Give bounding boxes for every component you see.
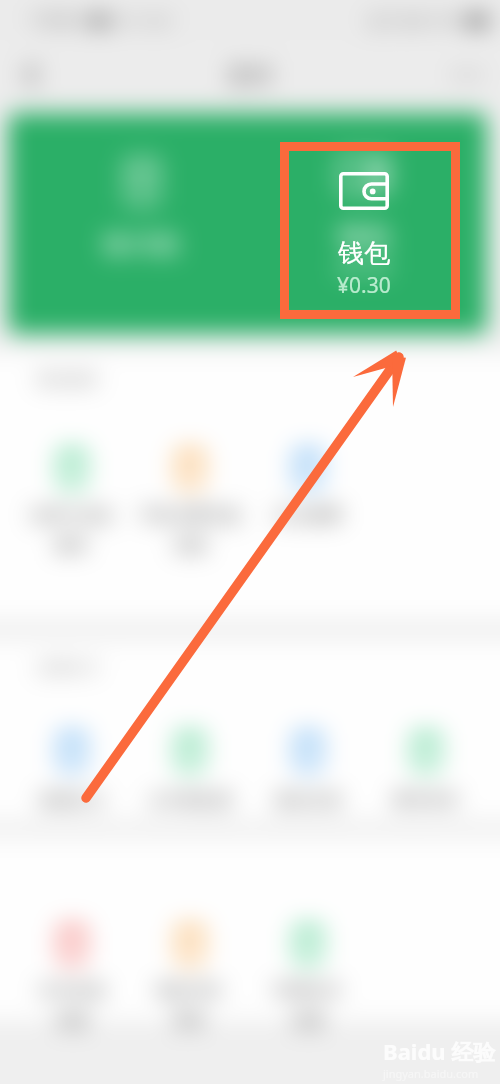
- button[interactable]: [280, 723, 336, 779]
- button[interactable]: [44, 723, 100, 779]
- button[interactable]: 吃喝玩乐 优惠: [250, 980, 366, 1031]
- button[interactable]: [162, 440, 218, 496]
- staticText: 中国移动: [30, 12, 86, 30]
- button[interactable]: Back: [8, 52, 54, 98]
- staticText: 87%: [433, 11, 461, 30]
- staticText: 酒店住宿: [250, 790, 366, 811]
- staticText: ¥0.30: [337, 271, 391, 300]
- staticText: 吃喝玩乐 优惠: [250, 980, 366, 1031]
- staticText: 钱包: [338, 220, 390, 253]
- staticText: 生活缴费: [250, 505, 366, 526]
- button[interactable]: 生活缴费: [250, 505, 366, 526]
- button[interactable]: 钱包 Wallet: [289, 152, 439, 312]
- button[interactable]: [280, 440, 336, 496]
- staticText: 火车票机票: [132, 790, 248, 811]
- button[interactable]: 电影演出 票务: [132, 980, 248, 1031]
- button[interactable]: [280, 916, 336, 972]
- button[interactable]: [162, 723, 218, 779]
- button[interactable]: [162, 916, 218, 972]
- staticText: 京东优选 优惠: [14, 980, 130, 1031]
- staticText: 电影演出 票务: [132, 980, 248, 1031]
- staticText: 手机话费充值 优惠: [132, 505, 248, 556]
- button[interactable]: 手机话费充值 优惠: [132, 505, 248, 556]
- button[interactable]: More options: [444, 52, 490, 98]
- staticText: 钱包: [338, 237, 390, 270]
- staticText: Baidu 经验: [383, 1036, 496, 1066]
- button[interactable]: [44, 440, 100, 496]
- button[interactable]: 火车票机票: [132, 790, 248, 811]
- button[interactable]: [398, 723, 454, 779]
- button[interactable]: 信用卡还款 服务: [14, 505, 130, 556]
- staticText: 摩拜单车: [368, 790, 484, 811]
- button[interactable]: 京东优选 优惠: [14, 980, 130, 1031]
- staticText: 收付款: [103, 228, 181, 261]
- button[interactable]: [44, 916, 100, 972]
- staticText: ¥0.30: [337, 254, 391, 283]
- button[interactable]: 摩拜单车: [368, 790, 484, 811]
- staticText: 支付: [227, 61, 273, 90]
- staticText: 信用卡还款 服务: [14, 505, 130, 556]
- button[interactable]: 酒店住宿: [250, 790, 366, 811]
- button[interactable]: 钱包: [289, 155, 439, 283]
- staticText: 滴滴出行: [14, 790, 130, 811]
- button[interactable]: 滴滴出行: [14, 790, 130, 811]
- button[interactable]: 收付款: [70, 158, 214, 261]
- staticText: 4G: [112, 11, 131, 30]
